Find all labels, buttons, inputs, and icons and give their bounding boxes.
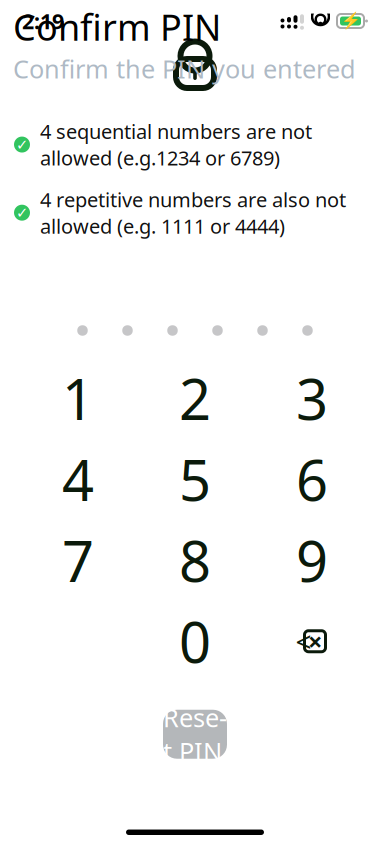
staticText: 2: [179, 361, 211, 435]
staticText: ✓: [16, 136, 28, 153]
button[interactable]: 0: [136, 601, 253, 682]
button[interactable]: 6: [253, 439, 370, 520]
button[interactable]: Delete: [253, 601, 370, 682]
staticText: Confirm PIN: [13, 3, 221, 51]
staticText: 5: [179, 442, 211, 516]
staticText: 1: [62, 361, 94, 435]
staticText: <: [295, 623, 311, 660]
staticText: 4: [62, 442, 94, 516]
staticText: 6: [296, 442, 328, 516]
button[interactable]: 3: [253, 358, 370, 439]
button[interactable]: Reset PIN: [163, 710, 227, 759]
staticText: 0: [179, 604, 211, 678]
staticText: 2:19: [22, 7, 64, 35]
staticText: 9: [296, 523, 328, 597]
staticText: 4 repetitive numbers are also not allowe…: [40, 186, 346, 239]
button[interactable]: 7: [19, 520, 136, 601]
button[interactable]: 1: [19, 358, 136, 439]
staticText: 8: [179, 523, 211, 597]
button[interactable]: 4: [19, 439, 136, 520]
button[interactable]: 8: [136, 520, 253, 601]
staticText: ×: [308, 624, 322, 658]
staticText: ⚡: [340, 12, 360, 30]
button[interactable]: 9: [253, 520, 370, 601]
button[interactable]: 5: [136, 439, 253, 520]
staticText: 3: [296, 361, 328, 435]
staticText: ✓: [16, 204, 28, 221]
staticText: 7: [62, 523, 94, 597]
button[interactable]: 2: [136, 358, 253, 439]
staticText: Reset PIN: [163, 701, 227, 768]
staticText: 4 sequential numbers are not allowed (e.…: [40, 118, 312, 171]
staticText: Confirm the PIN you entered: [13, 52, 356, 85]
